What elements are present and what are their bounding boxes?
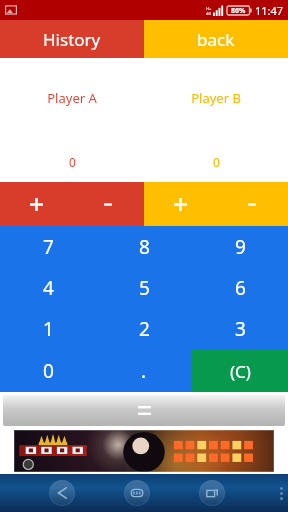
staticText: Player B [191,89,241,107]
button[interactable]: Recents [199,480,225,506]
button[interactable]: Minus [72,182,144,226]
button[interactable]: 0 [0,350,96,392]
staticText: 0 [213,154,220,170]
staticText: H+ [206,6,212,11]
staticText: 1 [43,316,54,342]
button[interactable]: . [96,350,192,392]
button[interactable]: History [0,20,144,58]
button[interactable]: 5 [96,267,192,308]
staticText: 4G [206,11,212,16]
staticText: History [43,28,101,51]
button[interactable]: Equals [3,395,285,426]
staticText: 4 [43,275,54,301]
button[interactable]: 6 [192,267,288,308]
staticText: back [197,28,235,51]
button[interactable]: Player B [144,58,288,182]
staticText: . [141,358,147,384]
staticText: 9 [235,234,246,260]
button[interactable]: Plus [144,182,216,226]
button[interactable]: Back [49,480,75,506]
button[interactable]: Minus [216,182,288,226]
button[interactable]: back [144,20,288,58]
button[interactable]: Plus [0,182,72,226]
staticText: 11:47 [255,3,284,18]
staticText: Player A [47,89,97,107]
button[interactable]: 2 [96,308,192,350]
staticText: 0 [69,154,76,170]
button[interactable]: 7 [0,226,96,267]
button[interactable]: 3 [192,308,288,350]
staticText: 8 [139,234,150,260]
button[interactable]: 8 [96,226,192,267]
staticText: 6 [235,275,246,301]
button[interactable]: Advertisement [14,430,274,472]
staticText: 0 [43,358,54,384]
staticText: 7 [43,234,54,260]
button[interactable]: Home [124,480,150,506]
staticText: 2 [139,316,150,342]
staticText: 86% [231,6,246,16]
staticText: 3 [235,316,246,342]
staticText: 5 [139,275,150,301]
button[interactable]: 9 [192,226,288,267]
staticText: (C) [230,360,251,383]
button[interactable]: 1 [0,308,96,350]
button[interactable]: 4 [0,267,96,308]
button[interactable]: (C) [192,350,288,392]
button[interactable]: Player A [0,58,144,182]
